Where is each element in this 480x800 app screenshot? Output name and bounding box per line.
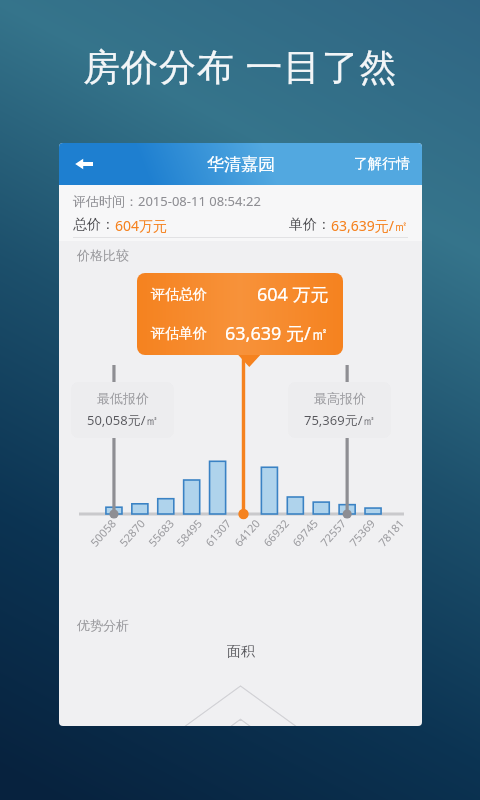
staticText: 总价： (73, 216, 115, 234)
staticText: 63,639元/㎡ (331, 216, 408, 235)
staticText: 评估时间：2015-08-11 08:54:22 (73, 192, 261, 210)
button[interactable]: 最低报价 (71, 382, 174, 438)
staticText: 50058 (87, 516, 119, 549)
staticText: 63,639 元/㎡ (225, 321, 329, 346)
staticText: 69745 (289, 516, 321, 549)
staticText: 面积 (227, 643, 255, 661)
staticText: 单价： (289, 216, 331, 234)
staticText: 604 万元 (257, 282, 329, 307)
staticText: 房价分布 一目了然 (83, 40, 398, 91)
staticText: 最低报价 (97, 390, 149, 406)
staticText: 优势分析 (77, 617, 129, 633)
staticText: 华清嘉园 (207, 154, 275, 175)
staticText: 58495 (173, 516, 205, 549)
button[interactable]: 最高报价 (288, 382, 391, 438)
staticText: 55683 (145, 516, 177, 549)
staticText: 50,058元/㎡ (87, 411, 159, 429)
staticText: 61307 (202, 516, 234, 549)
staticText: 最高报价 (314, 390, 366, 406)
staticText: 了解行情 (354, 155, 410, 173)
staticText: 评估总价 (151, 286, 207, 304)
staticText: 75369 (346, 516, 378, 549)
button[interactable]: 了解行情 (342, 147, 422, 181)
staticText: 78181 (375, 516, 407, 549)
button[interactable]: 评估总价 (137, 273, 343, 355)
staticText: 64120 (231, 516, 263, 549)
staticText: 66932 (260, 516, 292, 549)
staticText: 72557 (317, 516, 349, 549)
staticText: 75,369元/㎡ (304, 411, 376, 429)
staticText: 52870 (116, 516, 148, 549)
staticText: 价格比较 (77, 247, 129, 263)
staticText: 604万元 (115, 216, 168, 235)
staticText: 评估单价 (151, 325, 207, 343)
button[interactable]: Back (67, 147, 101, 181)
